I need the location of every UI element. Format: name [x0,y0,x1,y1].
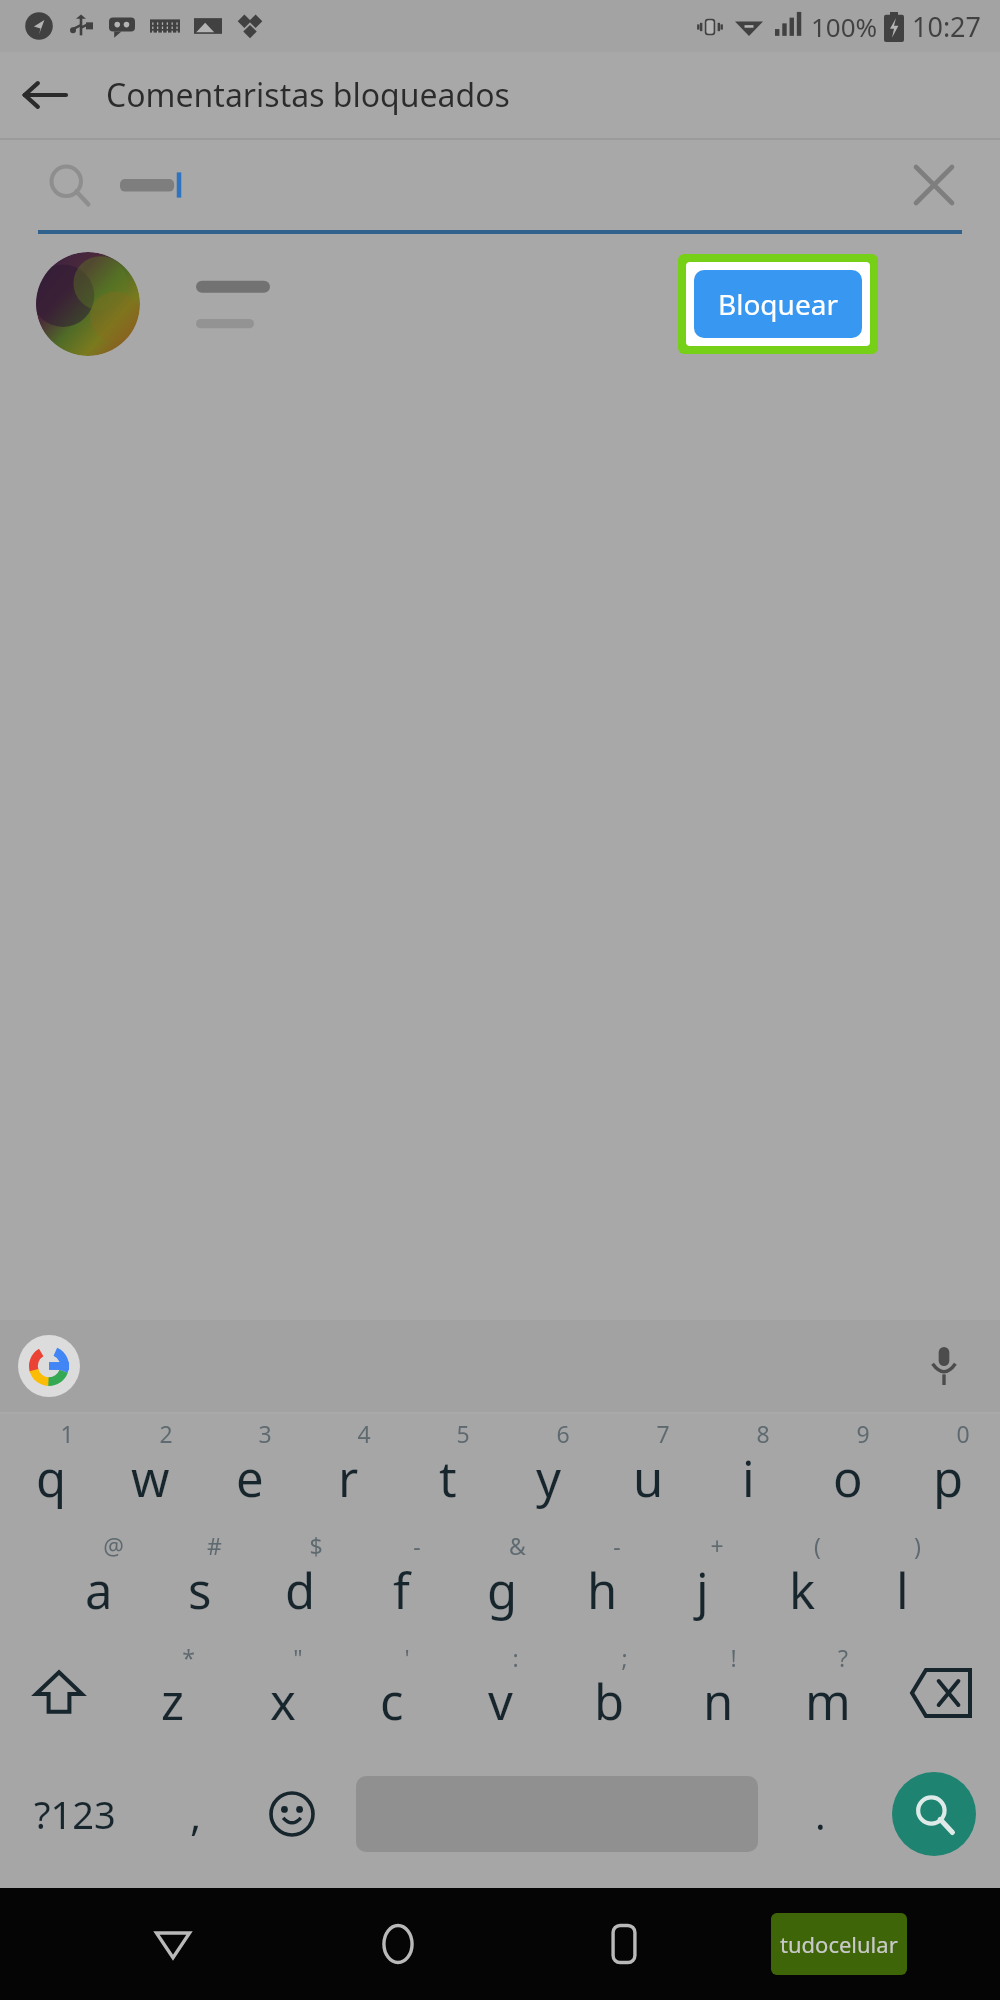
button[interactable]: 0 [898,1414,998,1526]
button[interactable]: ) [852,1526,952,1638]
button[interactable]: Voz [914,1336,974,1396]
staticText: ) [914,1530,921,1561]
staticText: m [805,1668,851,1735]
staticText: 10:27 [912,8,982,45]
staticText: 8 [756,1418,770,1449]
button[interactable]: Bloquear [694,270,862,338]
button[interactable]: Google [18,1335,80,1397]
staticText: @ [103,1530,124,1561]
staticText: ; [621,1642,628,1673]
staticText: u [633,1445,664,1512]
staticText: 4 [357,1418,371,1449]
staticText: 100% [811,9,878,44]
button[interactable]: Emoji [242,1748,342,1880]
staticText: n [703,1668,734,1735]
button[interactable]: 5 [398,1414,498,1526]
button[interactable]: Pesquisar [892,1772,976,1856]
staticText: t [439,1445,457,1512]
staticText: ( [814,1530,821,1561]
button[interactable]: Limpar [46,140,966,230]
staticText: 2 [159,1418,173,1449]
button[interactable]: 7 [598,1414,698,1526]
button[interactable]: Voltar [8,59,80,131]
button[interactable]: & [452,1526,552,1638]
staticText: . [815,1787,826,1841]
staticText: - [613,1530,621,1561]
staticText: h [587,1557,618,1624]
staticText: k [789,1557,816,1624]
staticText: g [487,1557,518,1624]
staticText: y [536,1445,561,1512]
staticText: j [696,1557,709,1624]
staticText: a [85,1557,113,1624]
button[interactable]: 3 [200,1414,299,1526]
staticText: q [36,1445,67,1512]
button[interactable]: ; [555,1638,664,1748]
button[interactable]: " [228,1638,337,1748]
staticText: Comentaristas bloqueados [106,73,510,117]
button[interactable]: Recentes [511,1888,737,2000]
staticText: 6 [556,1418,570,1449]
staticText: 7 [656,1418,670,1449]
staticText: tudocelular [780,1929,898,1959]
button[interactable]: ( [752,1526,852,1638]
button[interactable]: Limpar [902,153,966,217]
button[interactable]: Início [285,1888,511,2000]
staticText: 5 [456,1418,470,1449]
staticText: ? [838,1642,848,1673]
button[interactable]: ?123 [0,1748,150,1880]
button[interactable]: ? [773,1638,882,1748]
button[interactable]: . [772,1748,868,1880]
button[interactable]: 8 [698,1414,798,1526]
staticText: 3 [258,1418,272,1449]
button[interactable]: 2 [101,1414,200,1526]
button[interactable]: Apagar [882,1638,1000,1748]
button[interactable]: * [118,1638,228,1748]
staticText: r [338,1445,359,1512]
button[interactable]: $ [250,1526,351,1638]
staticText: f [393,1557,410,1624]
staticText: $ [309,1530,323,1561]
staticText: ?123 [34,1788,116,1840]
button[interactable]: : [446,1638,555,1748]
staticText: o [833,1445,863,1512]
button[interactable]: , [150,1748,242,1880]
staticText: + [710,1530,724,1561]
staticText: " [293,1642,303,1673]
staticText: v [488,1668,513,1735]
button[interactable]: 9 [798,1414,898,1526]
button[interactable]: 6 [498,1414,598,1526]
staticText: , [190,1786,202,1843]
staticText: 1 [60,1418,74,1449]
staticText: ! [730,1642,737,1673]
staticText: # [207,1530,222,1561]
button[interactable]: # [149,1526,250,1638]
button[interactable]: Shift [0,1638,118,1748]
staticText: : [512,1642,519,1673]
staticText: c [380,1668,404,1735]
staticText: ' [404,1642,410,1673]
staticText: w [131,1445,170,1512]
button[interactable]: ' [337,1638,446,1748]
staticText: * [182,1642,195,1673]
staticText: d [285,1557,316,1624]
button[interactable]: Voltar [60,1888,285,2000]
staticText: i [742,1445,755,1512]
staticText: z [161,1668,185,1735]
button[interactable]: + [652,1526,752,1638]
button[interactable]: - [552,1526,652,1638]
button[interactable]: Bloquear [0,234,1000,374]
staticText: s [188,1557,212,1624]
staticText: x [270,1668,296,1735]
staticText: b [594,1668,625,1735]
button[interactable]: 1 [2,1414,101,1526]
staticText: l [896,1557,909,1624]
button[interactable]: - [351,1526,452,1638]
button[interactable]: 4 [299,1414,398,1526]
staticText: & [509,1530,526,1561]
button[interactable]: ! [664,1638,773,1748]
staticText: e [236,1445,264,1512]
button[interactable]: @ [48,1526,149,1638]
staticText: 9 [856,1418,870,1449]
